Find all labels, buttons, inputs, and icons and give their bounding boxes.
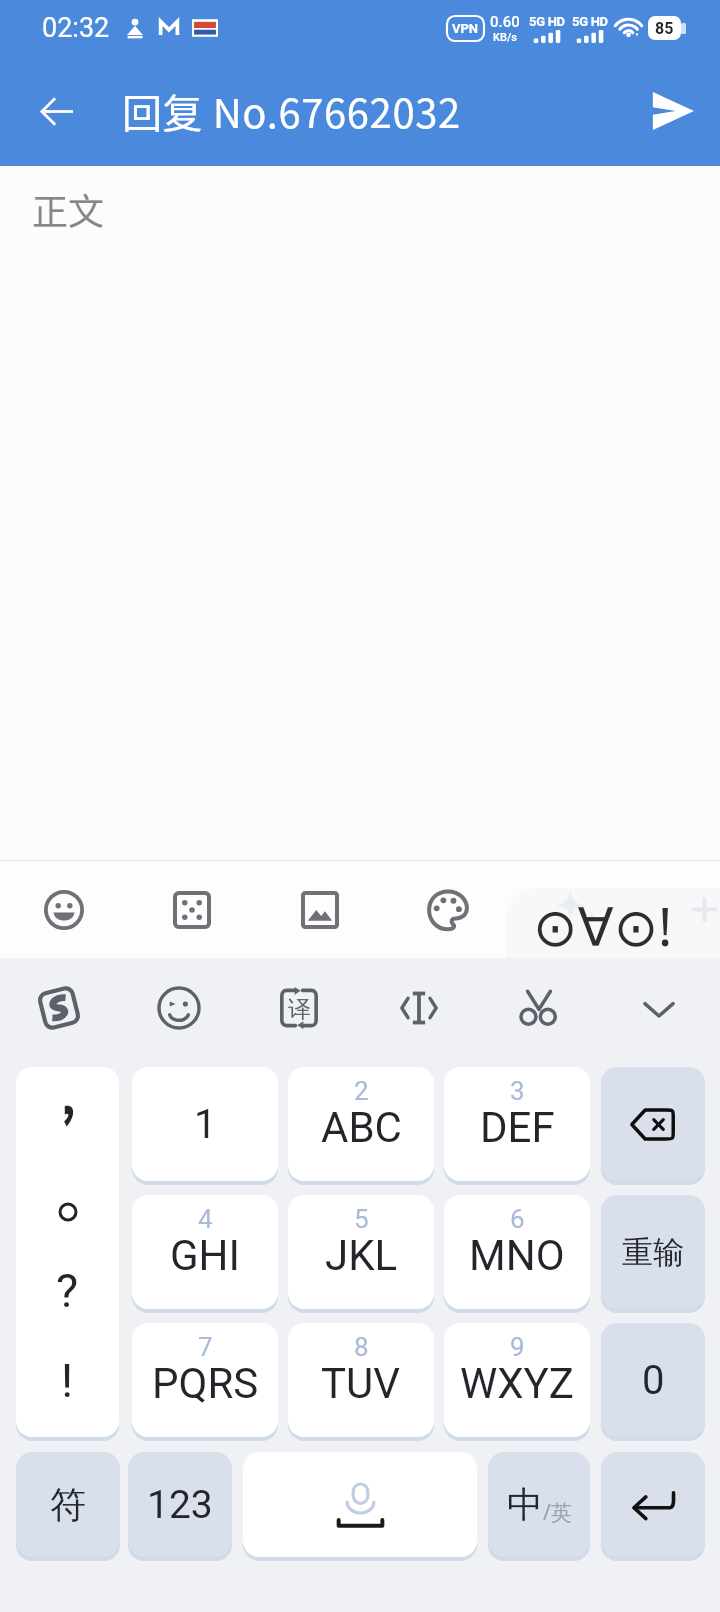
button[interactable]: Punctuation xyxy=(16,1067,119,1437)
staticText: 8 xyxy=(354,1332,369,1362)
button[interactable]: 重输 xyxy=(601,1195,705,1309)
button[interactable]: ABC xyxy=(288,1067,434,1181)
staticText: 85 xyxy=(655,19,674,38)
button[interactable]: JKL xyxy=(288,1195,434,1309)
button[interactable]: Hide keyboard xyxy=(609,957,709,1059)
staticText: 4 xyxy=(198,1204,213,1234)
button[interactable]: Emoji xyxy=(10,861,118,958)
staticText: 译 xyxy=(288,995,311,1024)
button[interactable]: DEF xyxy=(444,1067,590,1181)
staticText: 123 xyxy=(147,1482,213,1528)
staticText: /英 xyxy=(543,1498,572,1527)
button[interactable]: Cut xyxy=(489,957,589,1059)
staticText: 0 xyxy=(642,1357,665,1404)
staticText: VPN xyxy=(452,21,479,36)
staticText: 6 xyxy=(510,1204,525,1234)
button[interactable]: TUV xyxy=(288,1323,434,1437)
staticText: TUV xyxy=(321,1359,401,1408)
staticText: MNO xyxy=(469,1231,565,1280)
button[interactable]: Enter xyxy=(601,1452,705,1557)
staticText: KB/s xyxy=(493,31,517,44)
staticText: 9 xyxy=(510,1332,525,1362)
button[interactable]: Chinese / English xyxy=(488,1452,590,1557)
staticText: 5 xyxy=(354,1204,369,1234)
button[interactable]: 符 xyxy=(16,1452,120,1557)
staticText: 符 xyxy=(50,1482,86,1527)
staticText: 7 xyxy=(198,1332,213,1362)
staticText: GHI xyxy=(170,1231,240,1280)
button[interactable]: Dice xyxy=(138,861,246,958)
staticText: 中 xyxy=(507,1482,543,1527)
button[interactable]: Translate xyxy=(249,957,349,1059)
staticText: 2 xyxy=(354,1076,369,1106)
button[interactable]: Sticker pack xyxy=(506,888,720,958)
staticText: 02:32 xyxy=(42,12,110,44)
staticText: WXYZ xyxy=(460,1359,574,1408)
staticText: 回复 No.67662032 xyxy=(122,82,461,140)
staticText: PQRS xyxy=(152,1359,259,1408)
staticText: 正文 xyxy=(32,183,105,235)
button[interactable]: 1 xyxy=(132,1067,278,1181)
button[interactable]: Image xyxy=(266,861,374,958)
staticText: 3 xyxy=(510,1076,525,1106)
staticText: JKL xyxy=(325,1231,398,1280)
staticText: 5G HD xyxy=(529,14,565,29)
button[interactable]: WXYZ xyxy=(444,1323,590,1437)
button[interactable]: Backspace xyxy=(601,1067,705,1181)
button[interactable]: Move cursor xyxy=(369,957,469,1059)
button[interactable]: 0 xyxy=(601,1323,705,1437)
button[interactable]: Emoticons xyxy=(129,957,229,1059)
button[interactable]: 123 xyxy=(128,1452,232,1557)
button[interactable]: Send xyxy=(624,56,720,166)
staticText: 5G HD xyxy=(572,14,608,29)
staticText: ⊙∀⊙! xyxy=(533,889,673,961)
button[interactable]: MNO xyxy=(444,1195,590,1309)
button[interactable]: Sogou input xyxy=(9,957,109,1059)
staticText: ABC xyxy=(321,1103,402,1152)
button[interactable]: GHI xyxy=(132,1195,278,1309)
staticText: DEF xyxy=(480,1103,555,1152)
staticText: 重输 xyxy=(622,1233,684,1272)
button[interactable]: Back xyxy=(0,56,112,166)
staticText: ! xyxy=(61,1353,74,1408)
staticText: ? xyxy=(56,1263,79,1318)
staticText: 1 xyxy=(194,1101,217,1148)
button[interactable]: PQRS xyxy=(132,1323,278,1437)
button[interactable]: Theme xyxy=(394,861,502,958)
button[interactable]: Space xyxy=(243,1452,477,1557)
staticText: 0.60 xyxy=(490,13,520,31)
